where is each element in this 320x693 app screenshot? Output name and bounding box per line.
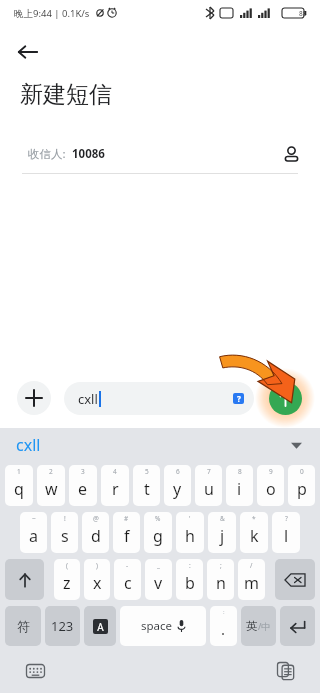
staticText: v: [154, 572, 163, 594]
button[interactable]: :: [210, 606, 237, 646]
button[interactable]: #: [113, 512, 140, 553]
staticText: 符: [17, 618, 30, 634]
staticText: t: [144, 478, 150, 500]
staticText: l: [284, 525, 289, 547]
staticText: j: [220, 525, 225, 547]
staticText: 0: [300, 467, 304, 476]
button[interactable]: 8: [226, 465, 253, 506]
button[interactable]: Send: [269, 382, 302, 415]
staticText: m: [244, 572, 259, 594]
button[interactable]: 符: [5, 606, 41, 646]
button[interactable]: ;: [207, 559, 234, 600]
staticText: z: [63, 572, 71, 594]
button[interactable]: *: [240, 512, 268, 553]
button[interactable]: %: [144, 512, 172, 553]
staticText: (: [66, 561, 68, 570]
staticText: 收信人:: [28, 146, 66, 162]
staticText: 8: [238, 467, 242, 476]
staticText: x: [93, 572, 102, 594]
staticText: !: [64, 514, 66, 523]
staticText: ?: [237, 393, 241, 404]
staticText: f: [124, 525, 130, 547]
button[interactable]: 4: [101, 465, 129, 506]
staticText: -: [126, 561, 129, 570]
staticText: 英: [246, 619, 258, 633]
button[interactable]: Add attachment: [17, 381, 51, 415]
button[interactable]: /: [238, 559, 265, 600]
staticText: ?: [285, 514, 288, 523]
staticText: r: [112, 478, 119, 500]
staticText: 7: [207, 467, 211, 476]
staticText: 123: [51, 617, 74, 635]
button[interactable]: space: [120, 606, 206, 646]
button[interactable]: 1: [5, 465, 33, 506]
button[interactable]: 9: [257, 465, 284, 506]
staticText: 6: [176, 467, 180, 476]
button[interactable]: 5: [133, 465, 160, 506]
staticText: e: [78, 478, 88, 500]
staticText: s: [61, 525, 69, 547]
staticText: 88: [299, 9, 307, 18]
button[interactable]: More candidates: [282, 431, 310, 459]
staticText: c: [124, 572, 132, 594]
button[interactable]: 3: [69, 465, 97, 506]
staticText: .: [221, 619, 226, 639]
button[interactable]: Back: [8, 32, 48, 72]
button[interactable]: ~: [20, 512, 47, 553]
staticText: cxll: [78, 390, 98, 408]
button[interactable]: Backspace: [275, 559, 315, 600]
staticText: ): [96, 561, 98, 570]
staticText: b: [185, 572, 195, 594]
button[interactable]: Switch keyboard: [20, 656, 50, 686]
staticText: /: [250, 561, 253, 570]
button[interactable]: ?: [272, 512, 300, 553]
button[interactable]: ): [84, 559, 110, 600]
button[interactable]: Shift: [5, 559, 44, 600]
button[interactable]: !: [51, 512, 78, 553]
staticText: h: [185, 525, 195, 547]
button[interactable]: 0: [288, 465, 315, 506]
staticText: 新建短信: [20, 80, 112, 109]
staticText: %: [155, 514, 161, 523]
staticText: q: [14, 478, 24, 500]
button[interactable]: 6: [164, 465, 191, 506]
staticText: k: [250, 525, 259, 547]
button[interactable]: Clipboard: [270, 656, 300, 686]
button[interactable]: Enter: [280, 606, 315, 646]
staticText: 10086: [72, 146, 105, 162]
staticText: d: [91, 525, 101, 547]
button[interactable]: @: [82, 512, 109, 553]
staticText: :: [223, 608, 225, 616]
button[interactable]: -: [114, 559, 141, 600]
button[interactable]: _: [145, 559, 172, 600]
staticText: :: [189, 561, 191, 570]
staticText: /中: [258, 620, 271, 632]
staticText: ;: [220, 561, 222, 570]
staticText: ~: [32, 514, 36, 523]
staticText: i: [237, 478, 242, 500]
staticText: _: [157, 561, 160, 570]
staticText: 3: [81, 467, 85, 476]
button[interactable]: &: [208, 512, 236, 553]
button[interactable]: 收信人:: [0, 135, 320, 173]
staticText: @: [93, 514, 99, 523]
staticText: p: [297, 478, 307, 500]
button[interactable]: cxll: [16, 434, 41, 456]
button[interactable]: cxll: [64, 382, 254, 415]
button[interactable]: (: [54, 559, 80, 600]
button[interactable]: 123: [45, 606, 80, 646]
button[interactable]: ': [176, 512, 204, 553]
staticText: A: [97, 620, 104, 634]
button[interactable]: 7: [195, 465, 222, 506]
staticText: *: [252, 514, 256, 523]
staticText: 5: [145, 467, 149, 476]
staticText: 2: [49, 467, 53, 476]
button[interactable]: Input language: [84, 606, 116, 646]
button[interactable]: 英: [241, 606, 276, 646]
button[interactable]: :: [176, 559, 203, 600]
button[interactable]: Pick contact: [272, 135, 310, 173]
button[interactable]: 2: [37, 465, 65, 506]
staticText: w: [45, 478, 58, 500]
staticText: n: [216, 572, 226, 594]
staticText: 1: [17, 467, 21, 476]
